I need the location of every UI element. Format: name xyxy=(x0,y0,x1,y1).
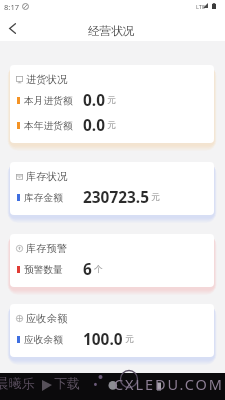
button[interactable]: 应收余额 xyxy=(10,304,214,357)
staticText: 库存金额 xyxy=(24,192,63,204)
staticText: 0.0 xyxy=(83,90,105,111)
staticText: 经营状况 xyxy=(88,24,135,39)
staticText: 库存状况 xyxy=(26,170,68,183)
staticText: 230723.5 xyxy=(83,187,149,208)
staticText: 个 xyxy=(94,264,103,275)
staticText: 进货状况 xyxy=(26,73,68,86)
staticText: 晨曦乐 xyxy=(0,375,35,391)
staticText: 元 xyxy=(125,334,134,345)
staticText: 应收余额 xyxy=(26,312,68,325)
staticText: 元 xyxy=(107,120,116,131)
staticText: 8:17 xyxy=(4,2,20,12)
button[interactable]: 库存预警 xyxy=(10,234,214,287)
button[interactable]: 库存状况 xyxy=(10,162,214,215)
staticText: 元 xyxy=(107,95,116,106)
staticText: • xyxy=(93,375,98,393)
staticText: 预警数量 xyxy=(24,264,63,276)
staticText: 库存预警 xyxy=(26,242,68,255)
staticText: CXLEDU.COM xyxy=(114,374,224,394)
button[interactable]: Back xyxy=(0,15,24,42)
button[interactable]: 进货状况 xyxy=(10,65,214,143)
staticText: 元 xyxy=(151,192,160,203)
staticText: LTE xyxy=(196,3,206,11)
staticText: 应收余额 xyxy=(24,334,63,346)
staticText: 本月进货额 xyxy=(24,95,73,107)
staticText: 下载 xyxy=(54,375,80,391)
staticText: 0.0 xyxy=(83,115,105,136)
staticText: 本年进货额 xyxy=(24,120,73,132)
staticText: 100.0 xyxy=(83,329,123,350)
staticText: 6 xyxy=(83,259,92,280)
